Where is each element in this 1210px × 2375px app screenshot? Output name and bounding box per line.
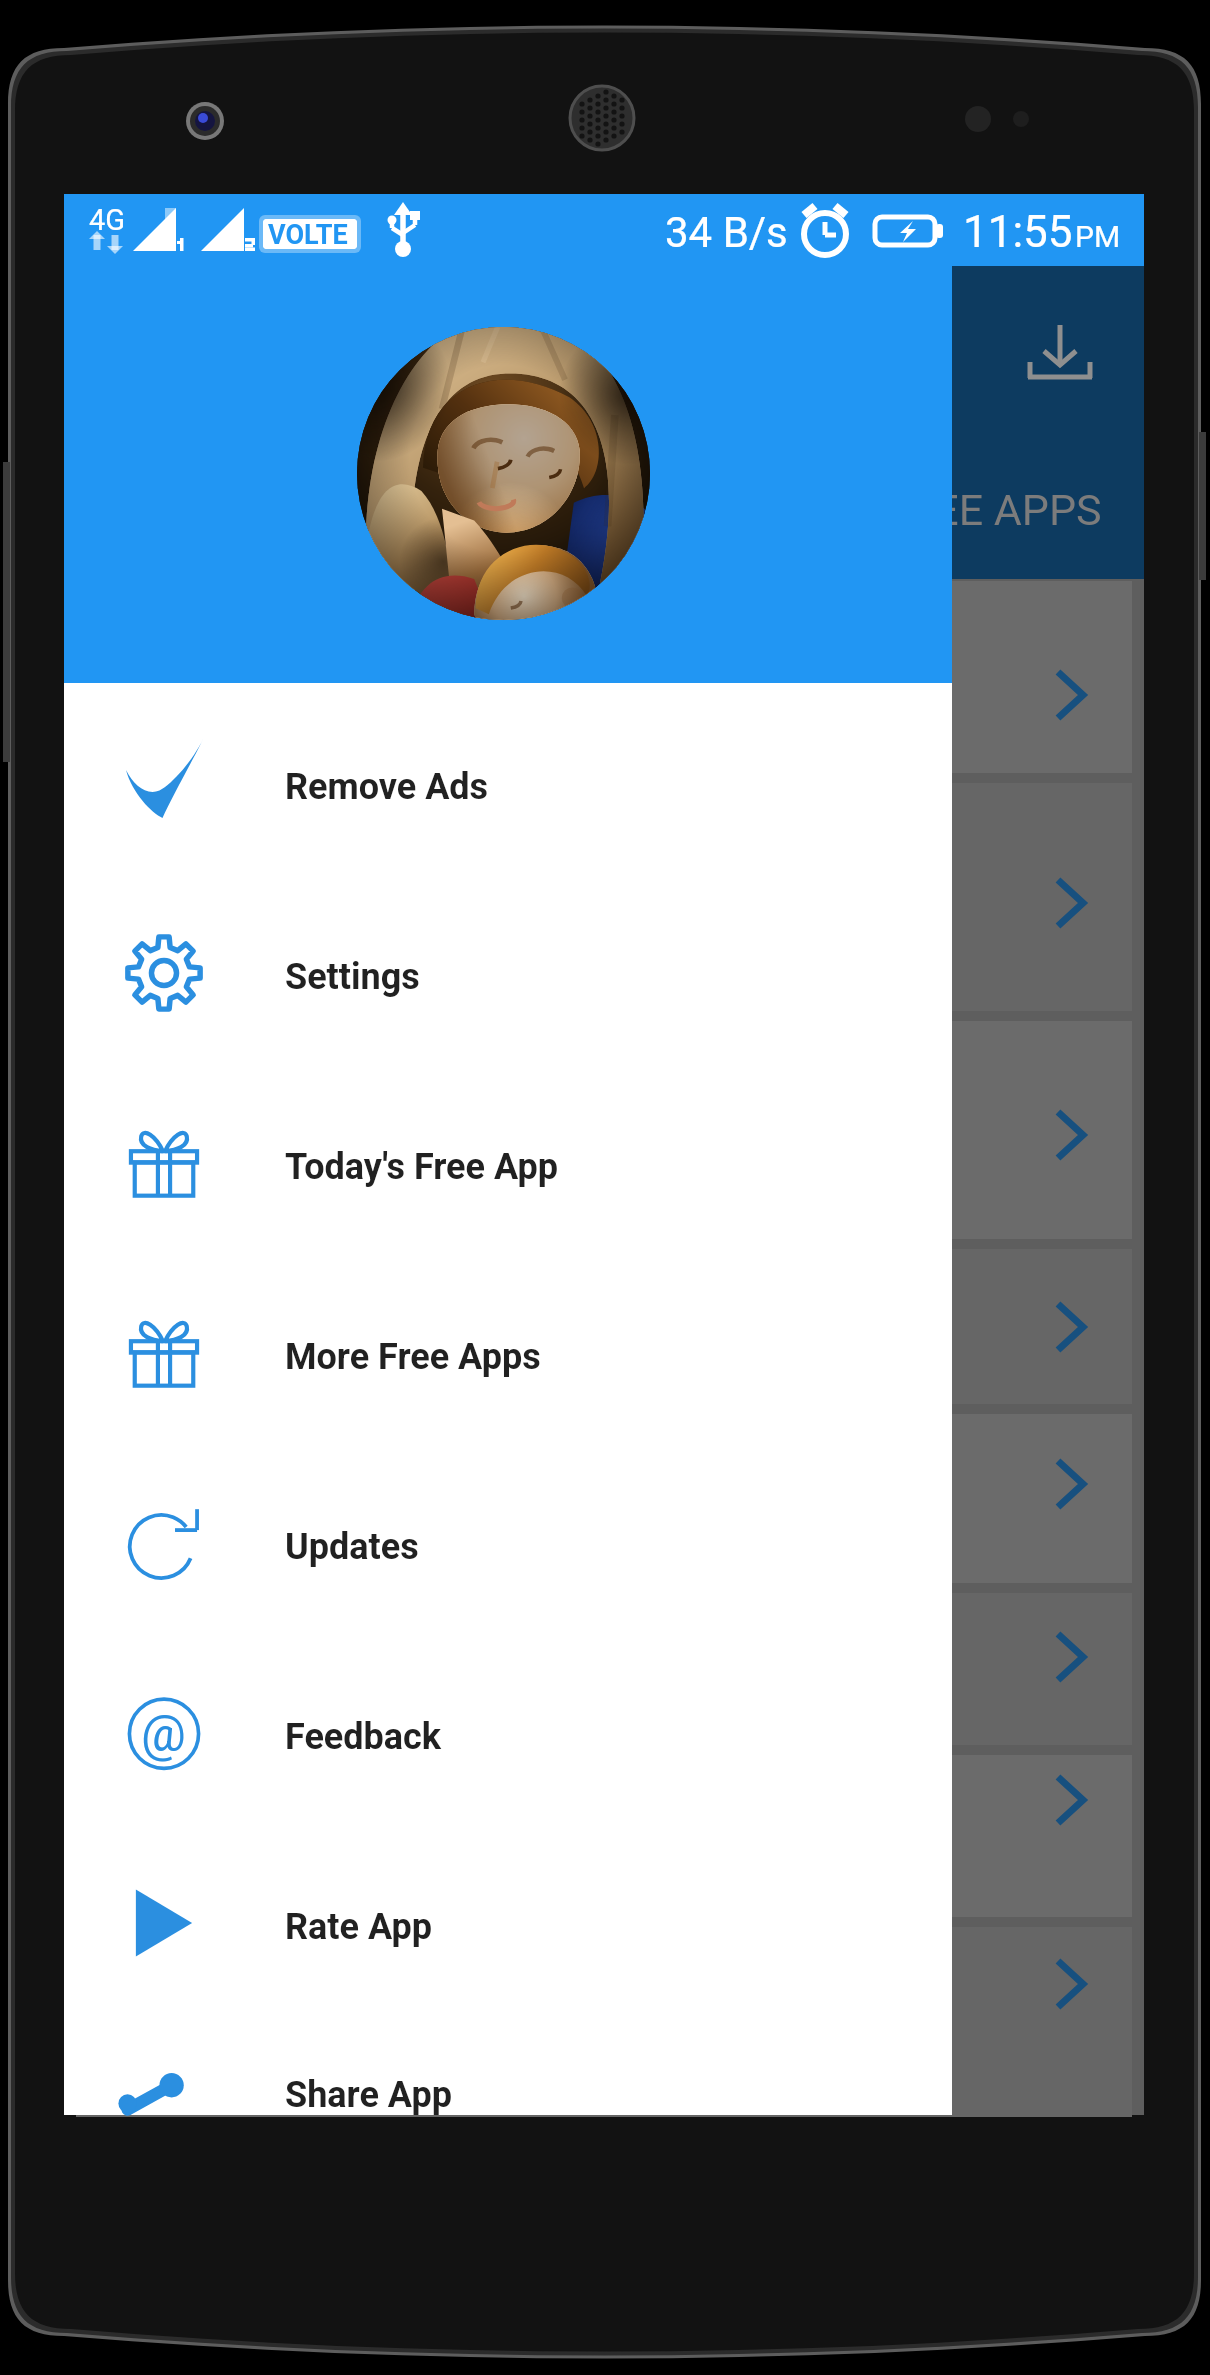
button[interactable]: Open item xyxy=(76,1249,1132,1404)
staticText: Rate App xyxy=(285,1906,433,1948)
button[interactable]: Open item xyxy=(76,1414,1132,1583)
button[interactable]: Open item xyxy=(76,581,1132,773)
staticText: Settings xyxy=(285,956,420,998)
button[interactable]: Remove Ads xyxy=(64,688,952,878)
button[interactable]: Today's Free App xyxy=(64,1068,952,1258)
button[interactable]: Open item xyxy=(76,1021,1132,1239)
staticText: More Free Apps xyxy=(285,1336,541,1378)
staticText: Today's Free App xyxy=(285,1146,559,1188)
button[interactable]: Share App xyxy=(64,2018,952,2115)
button[interactable]: Settings xyxy=(64,878,952,1068)
staticText: Updates xyxy=(285,1526,419,1568)
staticText: 4G xyxy=(89,203,126,237)
button[interactable]: @ xyxy=(64,1638,952,1828)
button[interactable]: Open item xyxy=(76,1593,1132,1745)
staticText: PM xyxy=(1075,219,1121,254)
button[interactable]: Updates xyxy=(64,1448,952,1638)
staticText: 11:55 xyxy=(963,206,1073,258)
staticText: Remove Ads xyxy=(285,766,489,808)
button[interactable]: More Free Apps xyxy=(64,1258,952,1448)
staticText: 34 B/s xyxy=(665,208,788,257)
button[interactable]: Rate App xyxy=(64,1828,952,2018)
staticText: FREE APPS xyxy=(884,485,1102,535)
button[interactable]: Open item xyxy=(76,1927,1132,2117)
button[interactable]: Download xyxy=(996,296,1124,424)
staticText: @ xyxy=(141,1705,186,1764)
button[interactable]: Open item xyxy=(76,783,1132,1011)
staticText: VOLTE xyxy=(268,219,348,251)
staticText: Feedback xyxy=(285,1716,442,1758)
staticText: Share App xyxy=(285,2074,452,2116)
button[interactable]: Open item xyxy=(76,1755,1132,1917)
